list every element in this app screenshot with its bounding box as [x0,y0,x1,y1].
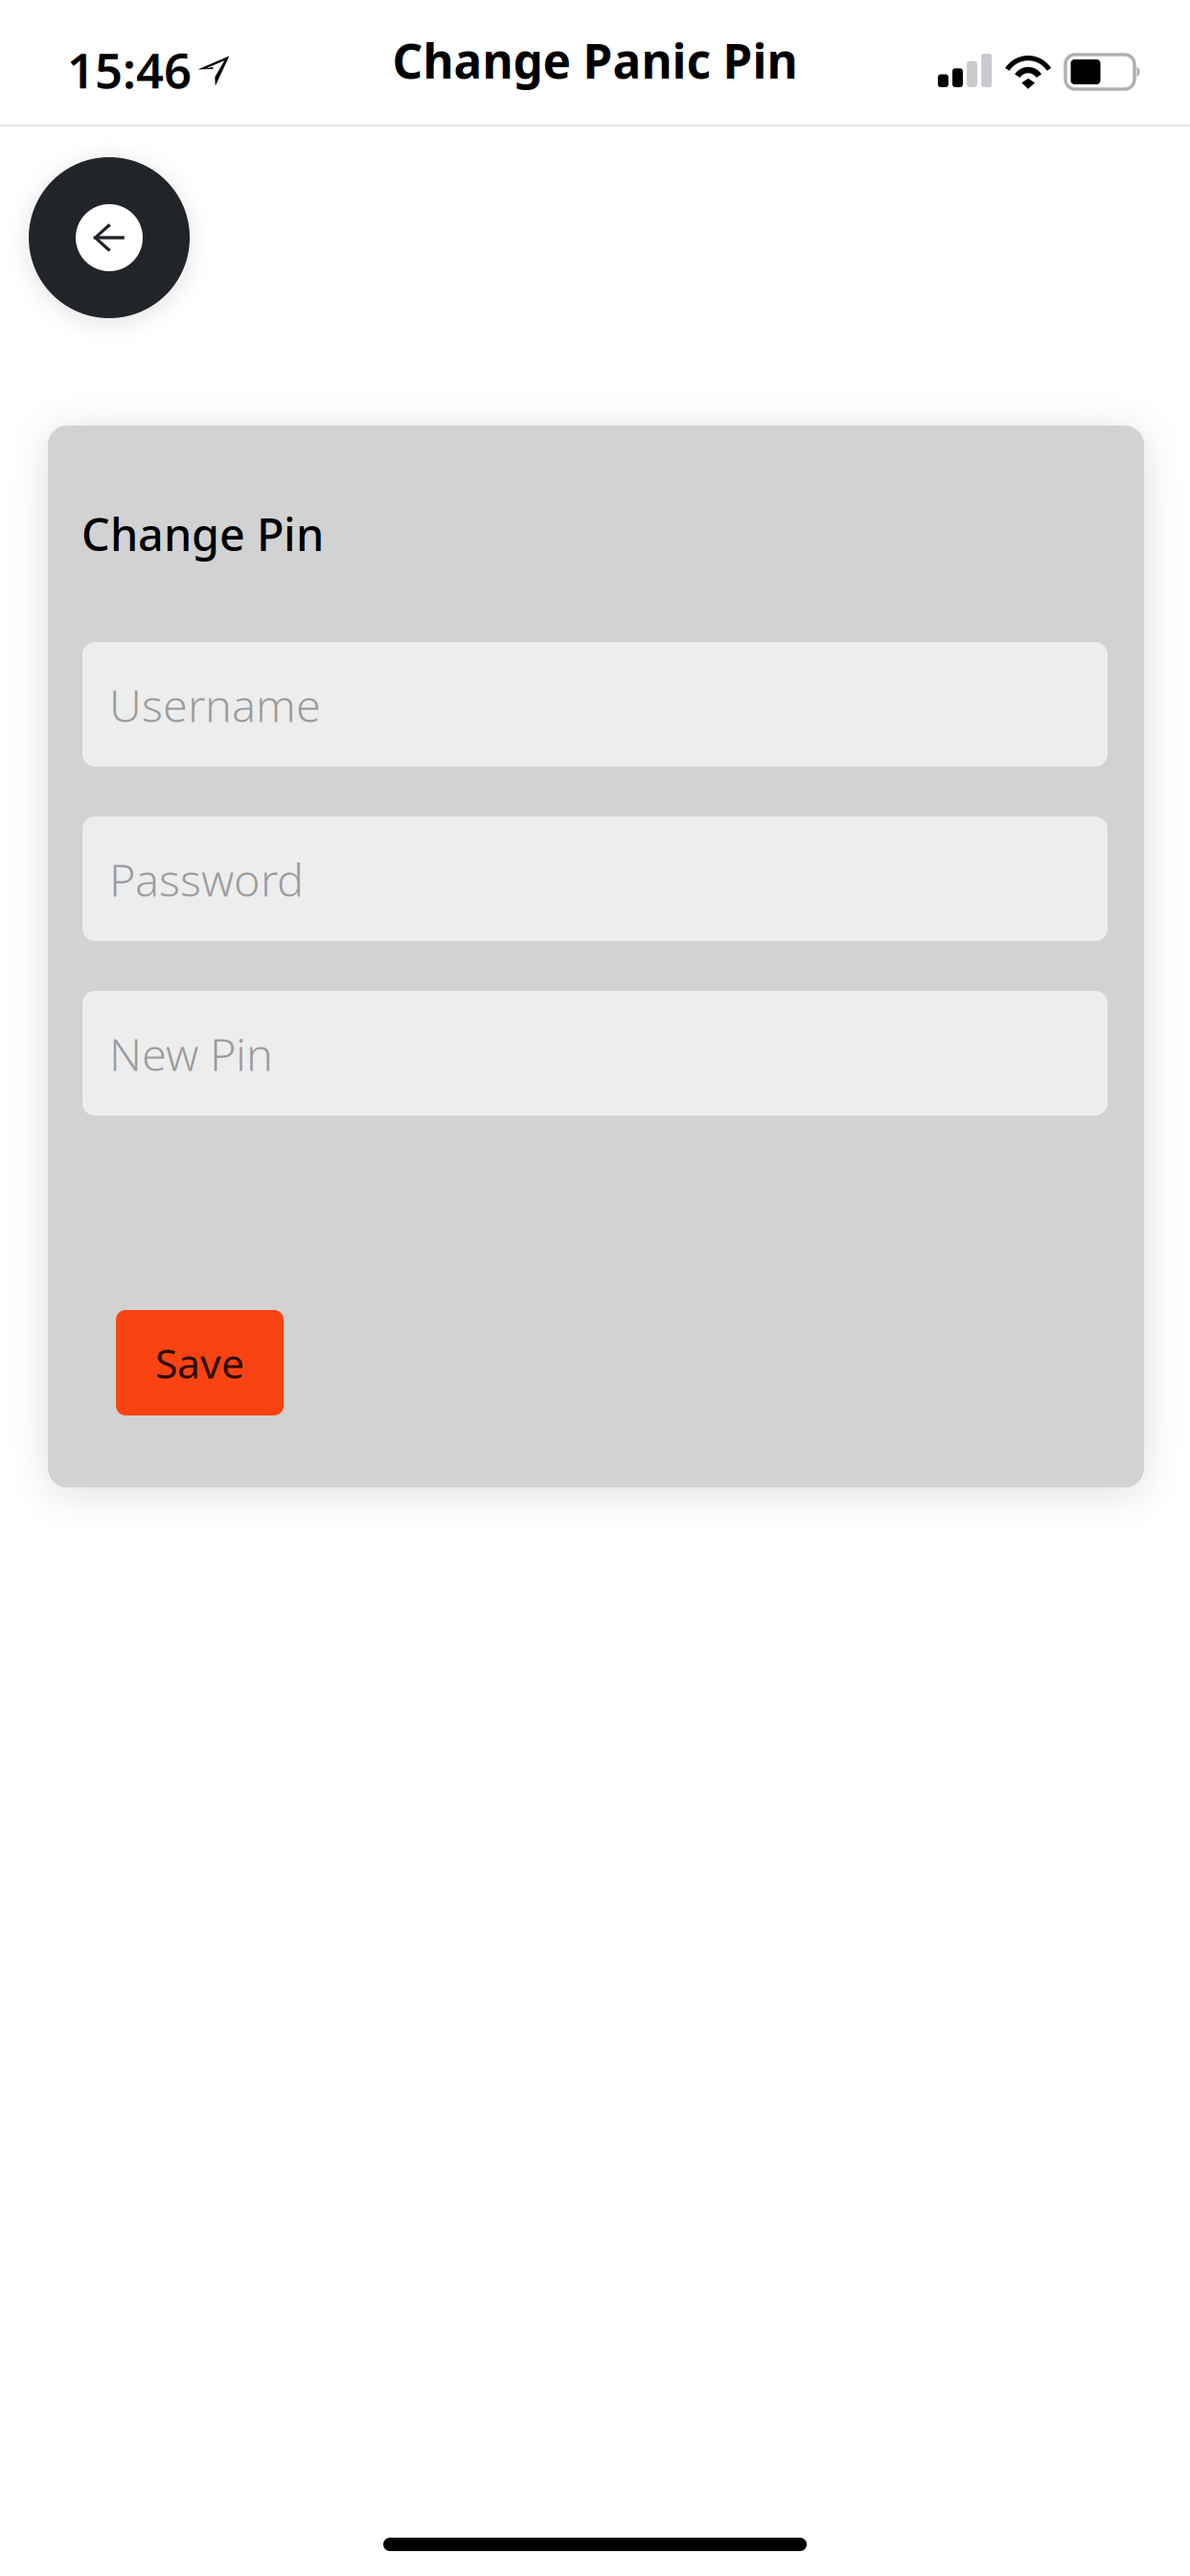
staticText: Password [109,850,304,909]
button[interactable]: Back [29,157,190,318]
button[interactable]: Username [82,642,1108,767]
staticText: Change Panic Pin [392,29,798,92]
button[interactable]: Password [82,816,1108,941]
staticText: 15:46 [67,37,192,102]
button[interactable]: New Pin [82,991,1108,1115]
staticText: New Pin [109,1024,273,1083]
button[interactable]: Save [116,1310,284,1415]
staticText: Username [109,675,321,735]
staticText: Save [155,1336,244,1390]
staticText: Change Pin [81,504,324,563]
